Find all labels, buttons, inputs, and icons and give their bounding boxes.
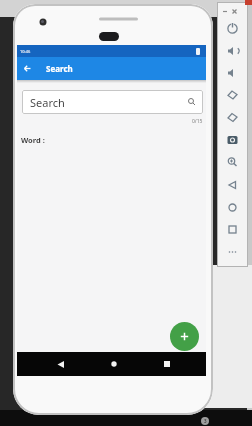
button[interactable] [217, 41, 248, 63]
button[interactable] [17, 57, 37, 80]
button[interactable] [217, 217, 248, 239]
button[interactable] [217, 19, 248, 41]
button[interactable] [217, 239, 248, 261]
button[interactable] [103, 353, 124, 375]
button[interactable] [156, 353, 177, 375]
staticText: 0/15 [192, 118, 203, 125]
button[interactable] [50, 353, 71, 375]
button[interactable] [217, 107, 248, 129]
button[interactable] [217, 151, 248, 173]
staticText: Search [46, 63, 73, 74]
button[interactable]: Search [22, 90, 203, 114]
button[interactable] [170, 322, 199, 351]
button[interactable] [217, 129, 248, 151]
button[interactable] [217, 63, 248, 85]
staticText: 10:46 [20, 49, 31, 54]
staticText: 3 [204, 418, 207, 424]
button[interactable] [217, 173, 248, 195]
staticText: Search [30, 95, 65, 110]
staticText: Word : [21, 135, 45, 145]
button[interactable] [217, 85, 248, 107]
button[interactable] [217, 195, 248, 217]
